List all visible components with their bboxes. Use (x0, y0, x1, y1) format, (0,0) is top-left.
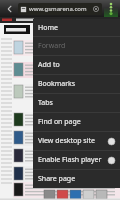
staticText: Bookmarks (38, 79, 76, 89)
button[interactable]: Share page (33, 170, 120, 188)
button[interactable]: Tabs (33, 94, 120, 112)
staticText: Share page (38, 174, 76, 184)
button[interactable]: More options (104, 0, 118, 17)
button[interactable]: Find on page (33, 113, 120, 131)
button[interactable]: View desktop site (33, 132, 120, 150)
button[interactable]: Back (2, 1, 18, 17)
staticText: Home (38, 23, 58, 33)
staticText: Find on page (38, 117, 81, 127)
button[interactable]: Enable Flash player (33, 151, 120, 169)
button[interactable]: Forward (33, 37, 120, 55)
staticText: Forward (38, 41, 66, 51)
button[interactable]: Bookmarks (33, 75, 120, 93)
staticText: View desktop site (38, 136, 96, 146)
staticText: Add to (38, 60, 60, 70)
button[interactable]: Clear (92, 5, 100, 13)
button[interactable]: Home (33, 19, 120, 36)
button[interactable]: www.gsmarena.com (18, 3, 102, 15)
staticText: Tabs (38, 98, 53, 108)
staticText: Enable Flash player (38, 155, 102, 165)
button[interactable]: Add to (33, 56, 120, 74)
staticText: www.gsmarena.com (29, 5, 87, 13)
